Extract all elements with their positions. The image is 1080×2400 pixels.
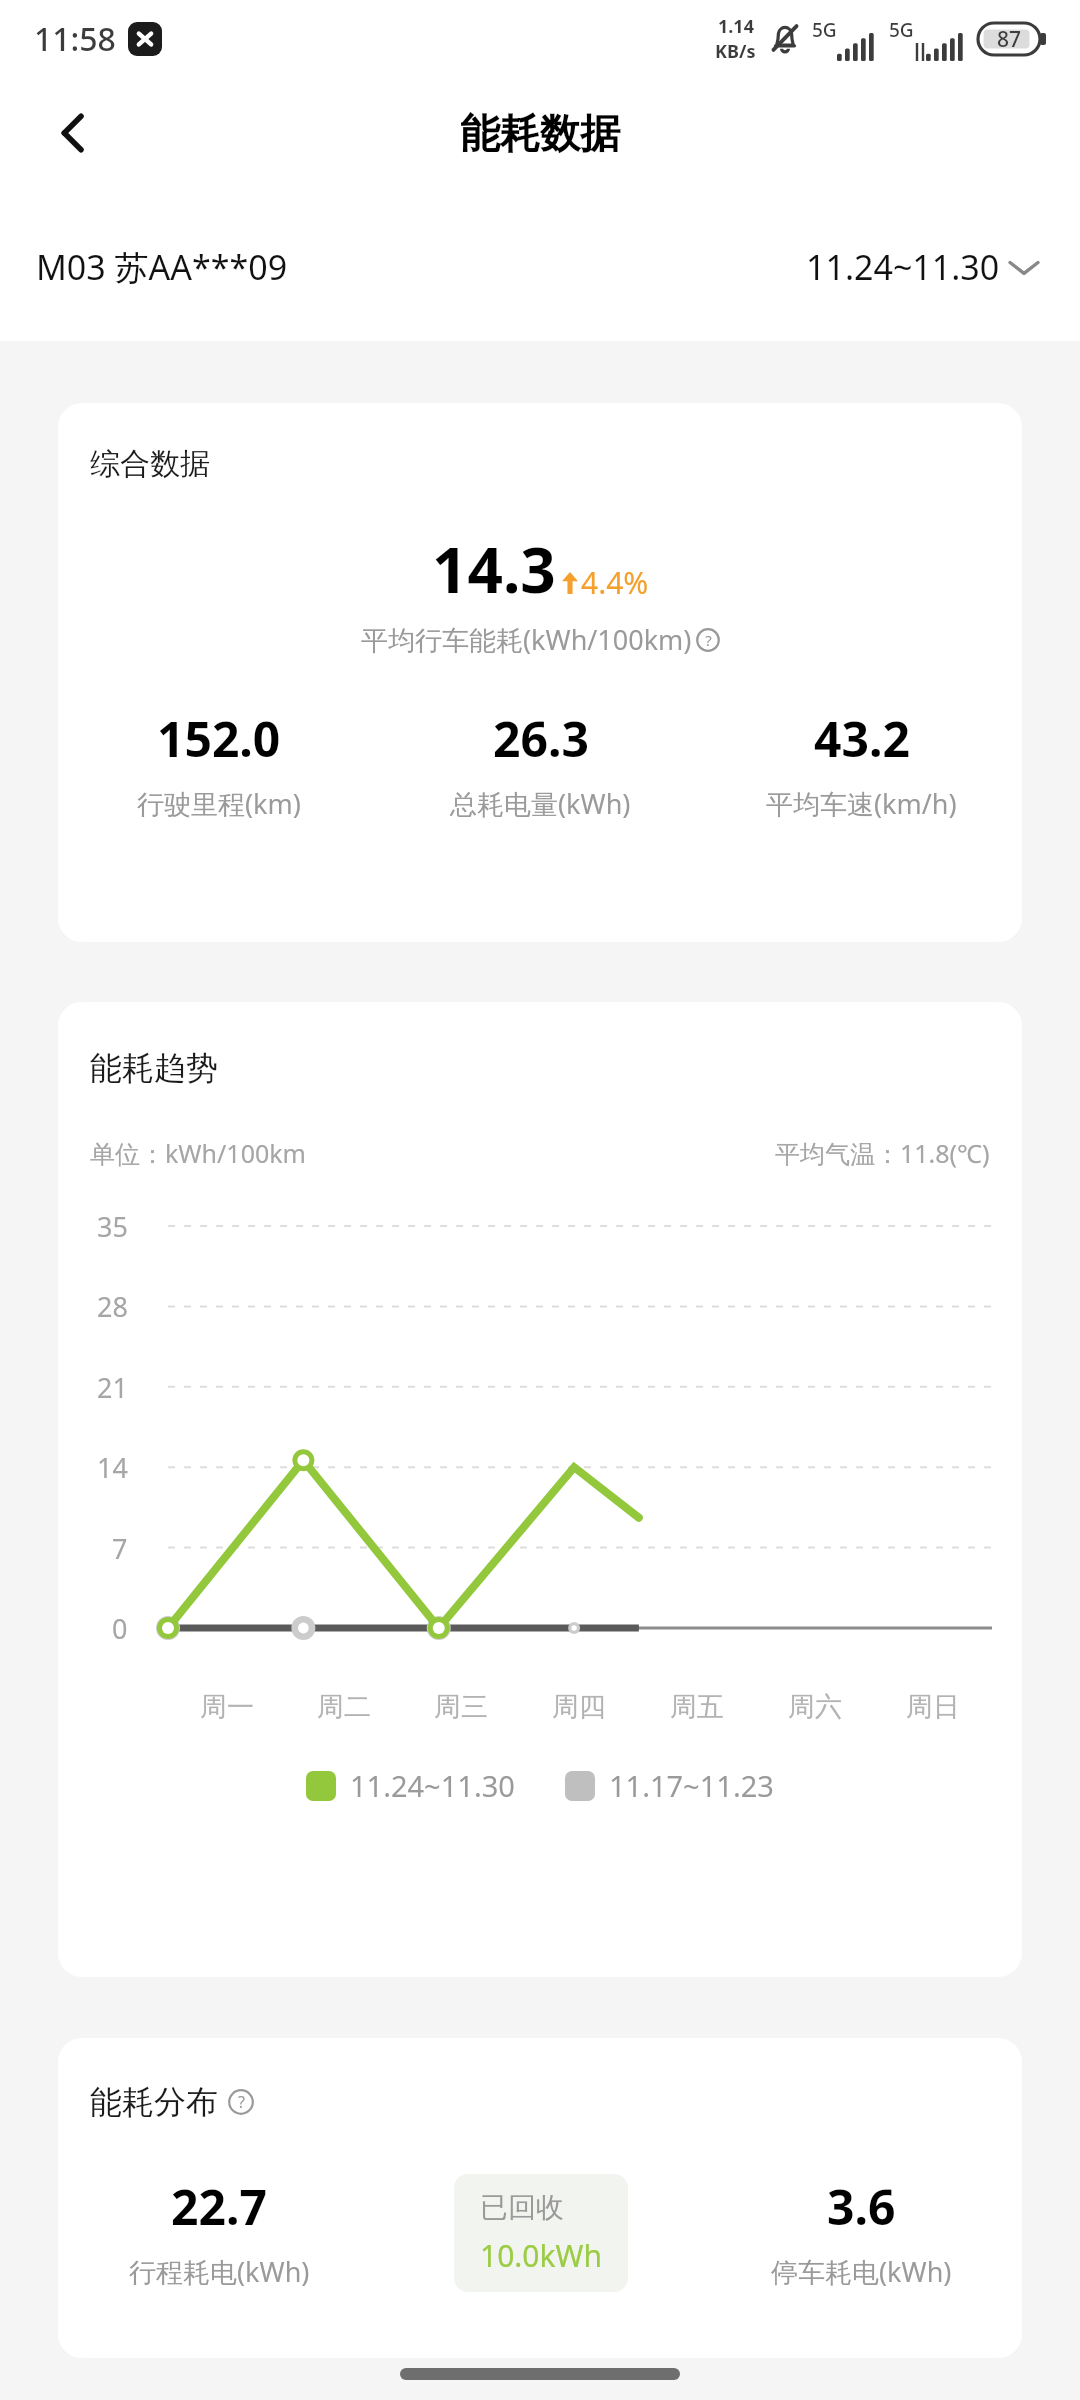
staticText: 0	[112, 1610, 128, 1647]
staticText: 平均行车能耗(kWh/100km)	[361, 621, 692, 658]
staticText: 11.17~11.23	[609, 1766, 774, 1805]
staticText: 停车耗电(kWh)	[771, 2253, 952, 2290]
staticText: 行驶里程(km)	[137, 785, 301, 822]
staticText: 总耗电量(kWh)	[450, 785, 631, 822]
staticText: 10.0kWh	[480, 2235, 602, 2276]
staticText: 周日	[906, 1690, 960, 1724]
staticText: 平均车速(km/h)	[766, 785, 957, 822]
staticText: 单位：kWh/100km	[90, 1136, 306, 1170]
staticText: 152.0	[157, 706, 281, 771]
staticText: 35	[97, 1208, 128, 1245]
button[interactable]: Back	[34, 93, 114, 173]
staticText: 周二	[317, 1690, 371, 1724]
staticText: 26.3	[493, 706, 589, 771]
staticText: 综合数据	[90, 445, 210, 483]
staticText: KB/s	[715, 39, 756, 64]
staticText: 平均气温：11.8(℃)	[775, 1136, 990, 1170]
staticText: 能耗数据	[460, 108, 620, 158]
staticText: 能耗趋势	[90, 1048, 218, 1088]
staticText: 1.14	[718, 14, 754, 39]
button[interactable]: 11.24~11.30	[800, 238, 1044, 296]
staticText: 21	[97, 1369, 128, 1406]
staticText: 周六	[788, 1690, 842, 1724]
staticText: 28	[97, 1288, 128, 1325]
staticText: 11.24~11.30	[350, 1766, 515, 1805]
staticText: 43.2	[814, 706, 910, 771]
staticText: 4.4%	[581, 562, 649, 603]
staticText: 周五	[670, 1690, 724, 1724]
staticText: 14.3	[432, 527, 556, 611]
staticText: 11.24~11.30	[806, 244, 1000, 290]
staticText: 周一	[200, 1690, 254, 1724]
staticText: 已回收	[480, 2190, 564, 2225]
staticText: 周三	[434, 1690, 488, 1724]
staticText: M03 苏AA***09	[36, 244, 288, 290]
staticText: ?	[238, 2091, 245, 2113]
staticText: 5G	[812, 17, 837, 43]
staticText: 22.7	[171, 2174, 267, 2239]
staticText: 周四	[552, 1690, 606, 1724]
staticText: 87	[997, 25, 1022, 54]
staticText: 11:58	[34, 17, 116, 61]
staticText: ?	[705, 630, 712, 650]
staticText: 3.6	[827, 2174, 896, 2239]
staticText: 5G	[889, 17, 914, 43]
staticText: 7	[112, 1530, 128, 1567]
staticText: 能耗分布	[90, 2082, 218, 2122]
staticText: 行程耗电(kWh)	[129, 2253, 310, 2290]
staticText: 14	[97, 1449, 128, 1486]
